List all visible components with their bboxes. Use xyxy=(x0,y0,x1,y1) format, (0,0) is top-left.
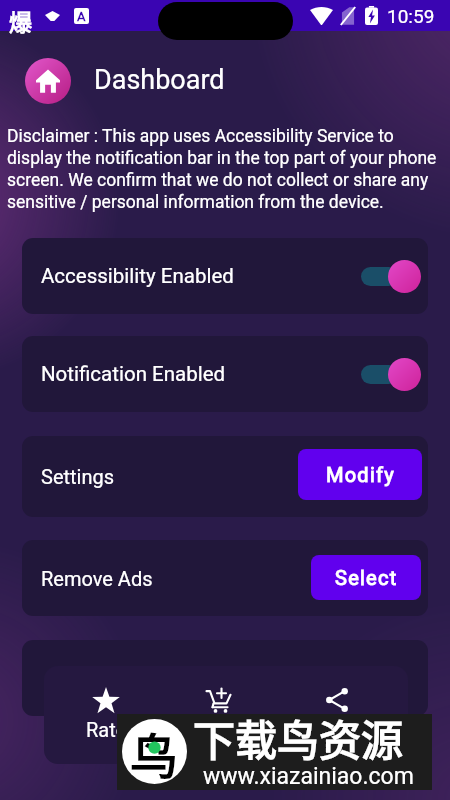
staticText: Disclaimer : This app uses Accessibility… xyxy=(7,126,443,213)
button[interactable]: Notification Enabled xyxy=(22,336,428,412)
staticText: 鸟 xyxy=(130,719,179,783)
button[interactable]: Rate xyxy=(60,687,152,741)
staticText: 10:59 xyxy=(387,5,435,27)
button[interactable] xyxy=(22,640,428,716)
button[interactable]: Remove Ads xyxy=(22,540,428,616)
button[interactable]: Toggle Accessibility Enabled xyxy=(355,238,423,314)
staticText: Accessibility Enabled xyxy=(41,264,234,288)
button[interactable]: Share xyxy=(291,687,383,738)
staticText: Remove Ads xyxy=(41,567,153,590)
staticText: Share xyxy=(312,715,363,738)
button[interactable]: Select xyxy=(311,555,421,600)
staticText: 下载鸟资源 xyxy=(193,707,404,768)
staticText: 爆 xyxy=(9,4,32,35)
staticText: Modify xyxy=(326,463,395,486)
staticText: www.xiazainiao.com xyxy=(203,763,414,790)
staticText: Notification Enabled xyxy=(41,362,226,386)
staticText: A xyxy=(77,9,86,24)
button[interactable]: Buy xyxy=(172,687,264,738)
staticText: Buy xyxy=(202,715,235,738)
staticText: Rate xyxy=(86,718,127,741)
button[interactable]: Modify xyxy=(298,449,422,500)
button[interactable]: Accessibility Enabled xyxy=(22,238,428,314)
button[interactable]: Home xyxy=(25,58,71,104)
staticText: Settings xyxy=(41,465,115,488)
staticText: Select xyxy=(335,566,398,589)
button[interactable]: Toggle Notification Enabled xyxy=(355,336,423,412)
button[interactable]: Settings xyxy=(22,436,428,517)
staticText: Dashboard xyxy=(94,64,225,96)
